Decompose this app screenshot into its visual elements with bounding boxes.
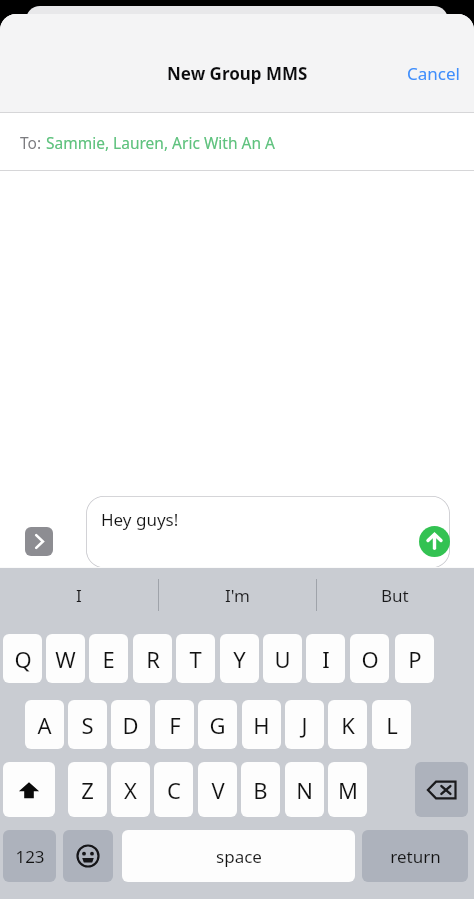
staticText: H: [253, 710, 270, 740]
staticText: G: [209, 710, 226, 740]
button[interactable]: P: [395, 634, 434, 683]
button[interactable]: S: [68, 700, 107, 749]
button[interactable]: Hey guys!: [86, 496, 450, 568]
staticText: 123: [15, 845, 45, 868]
staticText: M: [338, 775, 358, 805]
button[interactable]: B: [241, 762, 280, 817]
staticText: J: [301, 710, 308, 740]
staticText: C: [167, 775, 181, 805]
staticText: V: [211, 775, 225, 805]
staticText: Sammie, Lauren, Aric With An A: [46, 132, 275, 153]
staticText: New Group MMS: [167, 62, 308, 85]
staticText: R: [146, 644, 160, 674]
staticText: K: [341, 710, 355, 740]
staticText: space: [216, 845, 262, 868]
staticText: D: [122, 710, 139, 740]
staticText: I: [76, 584, 82, 607]
button[interactable]: space: [122, 830, 355, 882]
button[interactable]: D: [111, 700, 150, 749]
button[interactable]: More options: [25, 527, 53, 556]
staticText: X: [124, 775, 137, 805]
staticText: O: [361, 644, 379, 674]
staticText: F: [169, 710, 181, 740]
button[interactable]: W: [46, 634, 85, 683]
button[interactable]: Send: [419, 526, 450, 557]
button[interactable]: T: [176, 634, 215, 683]
button[interactable]: I: [0, 569, 158, 621]
button[interactable]: E: [89, 634, 128, 683]
staticText: L: [386, 710, 398, 740]
button[interactable]: C: [154, 762, 193, 817]
staticText: But: [381, 584, 409, 607]
button[interactable]: But: [316, 569, 474, 621]
button[interactable]: G: [198, 700, 237, 749]
button[interactable]: H: [242, 700, 281, 749]
staticText: Z: [81, 775, 94, 805]
button[interactable]: V: [198, 762, 237, 817]
button[interactable]: Q: [3, 634, 42, 683]
staticText: T: [189, 644, 202, 674]
button[interactable]: To:: [0, 113, 474, 170]
button[interactable]: Y: [220, 634, 259, 683]
button[interactable]: Z: [68, 762, 107, 817]
staticText: I'm: [225, 584, 250, 607]
staticText: S: [81, 710, 94, 740]
staticText: Hey guys!: [101, 508, 179, 531]
button[interactable]: X: [111, 762, 150, 817]
button[interactable]: J: [285, 700, 324, 749]
button[interactable]: Delete: [415, 762, 468, 817]
button[interactable]: return: [362, 830, 468, 882]
button[interactable]: R: [133, 634, 172, 683]
staticText: N: [296, 775, 313, 805]
staticText: U: [274, 644, 291, 674]
button[interactable]: K: [328, 700, 367, 749]
button[interactable]: O: [350, 634, 389, 683]
button[interactable]: I'm: [158, 569, 316, 621]
staticText: Y: [233, 644, 246, 674]
staticText: E: [102, 644, 115, 674]
staticText: P: [408, 644, 422, 674]
staticText: return: [390, 845, 441, 868]
button[interactable]: I: [306, 634, 345, 683]
button[interactable]: M: [328, 762, 367, 817]
staticText: W: [55, 644, 76, 674]
button[interactable]: F: [155, 700, 194, 749]
button[interactable]: Shift: [3, 762, 55, 817]
staticText: I: [322, 644, 330, 674]
button[interactable]: 123: [3, 830, 56, 882]
button[interactable]: N: [285, 762, 324, 817]
button[interactable]: A: [25, 700, 64, 749]
button[interactable]: Emoji: [63, 830, 113, 882]
staticText: A: [37, 710, 52, 740]
staticText: To:: [20, 132, 46, 153]
staticText: B: [253, 775, 268, 805]
staticText: Cancel: [407, 62, 460, 85]
button[interactable]: Cancel: [393, 56, 474, 91]
staticText: Q: [14, 644, 32, 674]
button[interactable]: L: [372, 700, 411, 749]
button[interactable]: U: [263, 634, 302, 683]
